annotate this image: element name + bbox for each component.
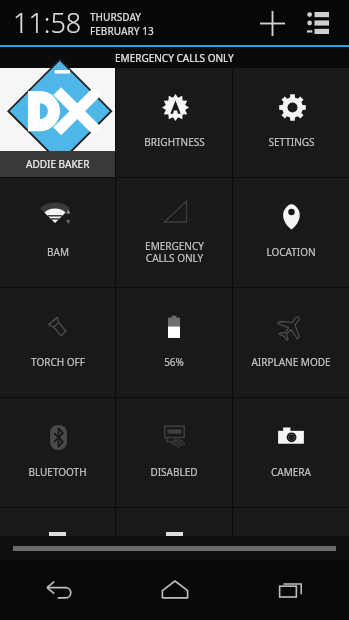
button[interactable]: EMERGENCY CALLS ONLY [116,178,232,287]
button[interactable]: Recent apps [233,560,349,620]
button[interactable]: Quick settings [297,2,339,44]
staticText: EMERGENCY CALLS ONLY [145,239,204,265]
button[interactable] [0,508,115,536]
button[interactable]: Add user [251,2,293,44]
button[interactable]: TORCH OFF [0,288,115,397]
button[interactable]: ADDIE BAKER [0,68,115,177]
staticText: 56% [164,355,184,369]
button[interactable]: SETTINGS [233,68,349,177]
staticText: CAMERA [271,465,311,479]
button[interactable]: AIRPLANE MODE [233,288,349,397]
staticText: EMERGENCY CALLS ONLY [115,51,234,65]
staticText: SETTINGS [268,135,315,149]
button[interactable]: Home [117,560,233,620]
button[interactable]: BRIGHTNESS [116,68,232,177]
staticText: ADDIE BAKER [26,157,90,171]
staticText: AIRPLANE MODE [251,355,331,369]
button[interactable]: LOCATION [233,178,349,287]
staticText: DISABLED [150,465,198,479]
button[interactable]: DISABLED [116,398,232,507]
button[interactable]: Back [0,560,117,620]
staticText: BLUETOOTH [28,465,87,479]
staticText: BAM [47,245,69,259]
button[interactable]: BLUETOOTH [0,398,115,507]
button[interactable]: 56% [116,288,232,397]
button[interactable]: BAM [0,178,115,287]
staticText: TORCH OFF [31,355,85,369]
staticText: LOCATION [266,245,316,259]
button[interactable] [116,508,232,536]
staticText: FEBRUARY 13 [90,24,154,38]
staticText: 11:58 [13,4,82,41]
staticText: THURSDAY [90,10,142,24]
button[interactable]: CAMERA [233,398,349,507]
staticText: BRIGHTNESS [144,135,205,149]
